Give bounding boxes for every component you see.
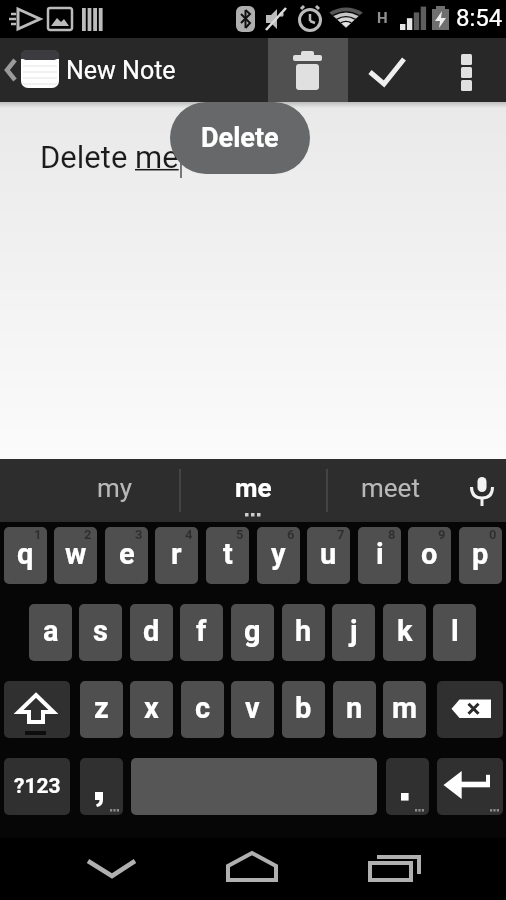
- button[interactable]: New Note: [66, 38, 246, 102]
- staticText: r: [171, 537, 182, 571]
- button[interactable]: b: [282, 681, 325, 738]
- button[interactable]: c: [181, 681, 224, 738]
- button[interactable]: j: [332, 604, 375, 661]
- button[interactable]: [458, 459, 506, 522]
- button[interactable]: [268, 38, 348, 102]
- staticText: l: [451, 614, 459, 648]
- staticText: e: [119, 537, 135, 571]
- staticText: 1: [34, 527, 42, 542]
- button[interactable]: [80, 758, 123, 815]
- staticText: h: [295, 614, 312, 648]
- staticText: v: [245, 691, 260, 725]
- staticText: k: [397, 614, 413, 648]
- staticText: 4: [185, 527, 193, 542]
- button[interactable]: e: [105, 527, 148, 584]
- staticText: s: [93, 614, 108, 648]
- button[interactable]: [428, 38, 506, 102]
- button[interactable]: x: [130, 681, 173, 738]
- staticText: i: [376, 537, 384, 571]
- button[interactable]: o: [408, 527, 451, 584]
- staticText: 6: [287, 527, 295, 542]
- button[interactable]: l: [433, 604, 476, 661]
- staticText: 0: [489, 527, 497, 542]
- button[interactable]: q: [4, 527, 47, 584]
- staticText: ?123: [14, 774, 61, 799]
- button[interactable]: [386, 758, 429, 815]
- staticText: New Note: [66, 56, 176, 85]
- button[interactable]: [60, 838, 170, 900]
- button[interactable]: [4, 681, 70, 738]
- staticText: t: [223, 537, 233, 571]
- staticText: q: [17, 537, 34, 571]
- button[interactable]: [340, 838, 450, 900]
- staticText: Delete me: [40, 139, 179, 175]
- staticText: c: [195, 691, 211, 725]
- staticText: 9: [438, 527, 446, 542]
- button[interactable]: n: [333, 681, 376, 738]
- button[interactable]: ?123: [4, 758, 70, 815]
- staticText: z: [94, 691, 109, 725]
- button[interactable]: k: [383, 604, 426, 661]
- button[interactable]: meet: [330, 459, 450, 517]
- staticText: f: [196, 614, 207, 648]
- staticText: u: [320, 537, 337, 571]
- button[interactable]: i: [358, 527, 401, 584]
- button[interactable]: [348, 38, 428, 102]
- button[interactable]: h: [282, 604, 325, 661]
- button[interactable]: d: [130, 604, 173, 661]
- staticText: y: [271, 537, 286, 571]
- staticText: o: [421, 537, 438, 571]
- button[interactable]: z: [80, 681, 123, 738]
- button[interactable]: [198, 838, 308, 900]
- staticText: 5: [236, 527, 244, 542]
- button[interactable]: [0, 38, 506, 102]
- button[interactable]: my: [40, 459, 190, 517]
- button[interactable]: m: [383, 681, 426, 738]
- button[interactable]: [437, 758, 503, 815]
- staticText: H: [377, 9, 388, 27]
- staticText: w: [65, 537, 87, 571]
- staticText: me: [235, 473, 272, 503]
- staticText: Delete: [201, 122, 279, 154]
- button[interactable]: [437, 681, 503, 738]
- button[interactable]: u: [307, 527, 350, 584]
- button[interactable]: t: [206, 527, 249, 584]
- button[interactable]: me: [190, 459, 316, 517]
- button[interactable]: s: [79, 604, 122, 661]
- button[interactable]: p: [459, 527, 502, 584]
- staticText: 8: [388, 527, 396, 542]
- button[interactable]: f: [180, 604, 223, 661]
- button[interactable]: a: [29, 604, 72, 661]
- staticText: x: [144, 691, 159, 725]
- button[interactable]: y: [257, 527, 300, 584]
- staticText: my: [97, 473, 133, 503]
- staticText: 3: [135, 527, 143, 542]
- staticText: b: [295, 691, 312, 725]
- staticText: n: [346, 691, 363, 725]
- staticText: meet: [361, 473, 420, 503]
- staticText: m: [392, 691, 418, 725]
- staticText: d: [143, 614, 160, 648]
- button[interactable]: g: [231, 604, 274, 661]
- button[interactable]: r: [155, 527, 198, 584]
- staticText: p: [472, 537, 489, 571]
- staticText: 2: [84, 527, 92, 542]
- staticText: 8:54: [456, 4, 503, 32]
- staticText: g: [244, 614, 261, 648]
- staticText: 7: [337, 527, 345, 542]
- staticText: j: [350, 614, 358, 648]
- button[interactable]: w: [54, 527, 97, 584]
- staticText: a: [43, 614, 59, 648]
- button[interactable]: v: [231, 681, 274, 738]
